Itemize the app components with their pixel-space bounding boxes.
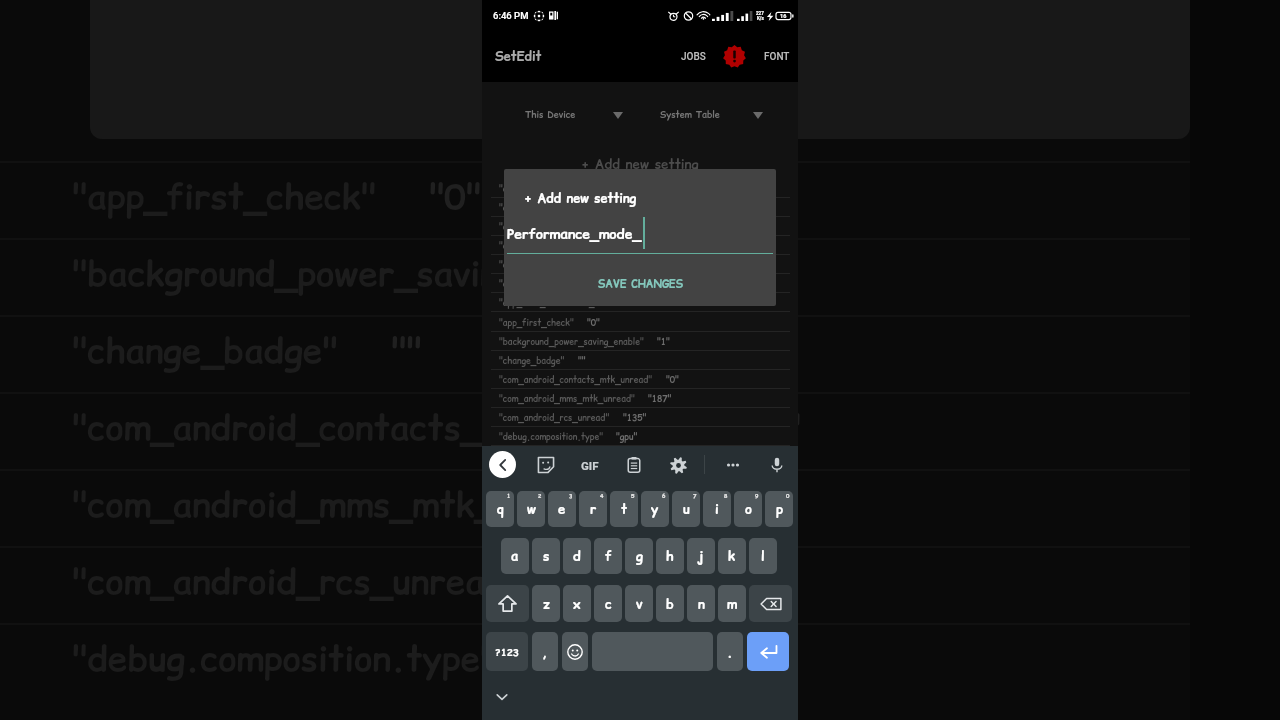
button[interactable]: SAVE CHANGES <box>580 273 701 296</box>
staticText: g <box>636 547 643 565</box>
staticText: 227 <box>756 11 764 16</box>
button[interactable]: , <box>532 632 558 671</box>
button[interactable]: b <box>656 585 684 622</box>
button[interactable]: "com_android_rcs_unread" <box>482 408 798 427</box>
staticText: 4 <box>600 492 604 500</box>
staticText: "change_badge" <box>72 326 338 375</box>
staticText: "app_auto_restriction_enabled" <box>499 297 630 309</box>
button[interactable]: x <box>563 585 591 622</box>
staticText: SetEdit <box>495 48 542 66</box>
button[interactable]: JOBS <box>672 31 714 82</box>
button[interactable]: r <box>579 491 607 527</box>
staticText: "com_android_contacts_mtk_unread" <box>499 374 653 386</box>
staticText: "alarm_alert_set" <box>499 221 574 233</box>
button[interactable]: "alarm_alert" <box>482 198 798 217</box>
button[interactable]: Settings <box>665 452 691 478</box>
button[interactable]: Warning <box>721 43 748 70</box>
staticText: "0" <box>749 403 801 452</box>
staticText: "com_android_mms_mtk_unread" <box>499 393 635 405</box>
button[interactable]: c <box>594 585 622 622</box>
button[interactable]: i <box>703 491 731 527</box>
button[interactable]: o <box>734 491 762 527</box>
button[interactable]: h <box>656 538 684 574</box>
button[interactable]: Back <box>489 451 516 478</box>
staticText: 9 <box>755 492 759 500</box>
staticText: "1" <box>715 249 767 298</box>
button[interactable]: FONT <box>755 31 798 82</box>
button[interactable]: y <box>641 491 669 527</box>
staticText: s <box>543 547 550 565</box>
button[interactable]: l <box>749 538 777 574</box>
button[interactable]: m <box>718 585 746 622</box>
staticText: "anr_show_background" <box>499 259 597 271</box>
button[interactable]: q <box>486 491 514 527</box>
button[interactable]: ?123 <box>486 632 528 671</box>
staticText: "1" <box>643 297 656 309</box>
staticText: 1 <box>507 492 511 500</box>
button[interactable]: "android_id" <box>482 236 798 255</box>
button[interactable]: k <box>718 538 746 574</box>
button[interactable]: This Device <box>520 105 628 126</box>
staticText: "debug.composition.type" <box>499 431 603 443</box>
button[interactable]: w <box>517 491 545 527</box>
staticText: "debug.composition.type" <box>72 634 496 683</box>
button[interactable] <box>486 585 529 622</box>
staticText: q <box>497 500 504 518</box>
button[interactable]: Voice input <box>764 452 790 478</box>
staticText: System Table <box>660 109 720 122</box>
button[interactable]: e <box>548 491 576 527</box>
button[interactable]: "com_android_contacts_mtk_unread" <box>482 370 798 389</box>
button[interactable]: "debug.composition.type" <box>482 427 798 446</box>
button[interactable]: j <box>687 538 715 574</box>
button[interactable]: "app_first_check" <box>482 313 798 332</box>
staticText: "gpu" <box>616 431 638 443</box>
staticText: GIF <box>581 459 599 472</box>
button[interactable]: More options <box>720 452 746 478</box>
staticText: "0" <box>608 278 621 290</box>
button[interactable]: "app_auto_restriction_enabled" <box>482 293 798 312</box>
staticText: b <box>666 595 674 613</box>
staticText: "1" <box>617 183 630 195</box>
button[interactable] <box>562 632 588 671</box>
button[interactable]: t <box>610 491 638 527</box>
button[interactable]: Stickers <box>533 452 559 478</box>
button[interactable]: n <box>687 585 715 622</box>
staticText: x <box>573 595 581 613</box>
button[interactable]: + Add new setting <box>581 155 699 173</box>
staticText: u <box>683 500 690 518</box>
button[interactable]: "alarm_alert_set" <box>482 217 798 236</box>
button[interactable]: u <box>672 491 700 527</box>
button[interactable]: z <box>532 585 560 622</box>
staticText: 2 <box>538 492 542 500</box>
staticText: "alarm_alert" <box>499 202 555 214</box>
button[interactable]: f <box>594 538 622 574</box>
button[interactable]: "anr_show_background" <box>482 255 798 274</box>
button[interactable]: Clipboard <box>621 452 647 478</box>
button[interactable]: "background_power_saving_enable" <box>482 332 798 351</box>
staticText: 6 <box>662 492 666 500</box>
button[interactable] <box>747 632 789 671</box>
button[interactable]: p <box>765 491 793 527</box>
staticText: "com_android_contacts_mtk_unread" <box>72 403 696 452</box>
button[interactable] <box>749 585 792 622</box>
button[interactable]: Hide keyboard <box>493 688 511 706</box>
button[interactable]: "change_badge" <box>482 351 798 370</box>
staticText: "background_power_saving_enable" <box>72 249 662 298</box>
button[interactable]: "accelerometer_rotation" <box>482 179 798 198</box>
staticText: 8 <box>724 492 728 500</box>
button[interactable]: System Table <box>655 105 768 126</box>
button[interactable]: v <box>625 585 653 622</box>
staticText: c <box>605 595 612 613</box>
button[interactable]: GIF <box>577 452 603 478</box>
staticText: z <box>543 595 550 613</box>
staticText: "187" <box>648 393 672 405</box>
button[interactable]: d <box>563 538 591 574</box>
button[interactable]: "com_android_mms_mtk_unread" <box>482 389 798 408</box>
staticText: "135" <box>574 557 669 606</box>
button[interactable]: a <box>501 538 529 574</box>
button[interactable]: "apply_ramping_ringer" <box>482 274 798 293</box>
button[interactable]: s <box>532 538 560 574</box>
button[interactable]: g <box>625 538 653 574</box>
button[interactable]: . <box>717 632 743 671</box>
